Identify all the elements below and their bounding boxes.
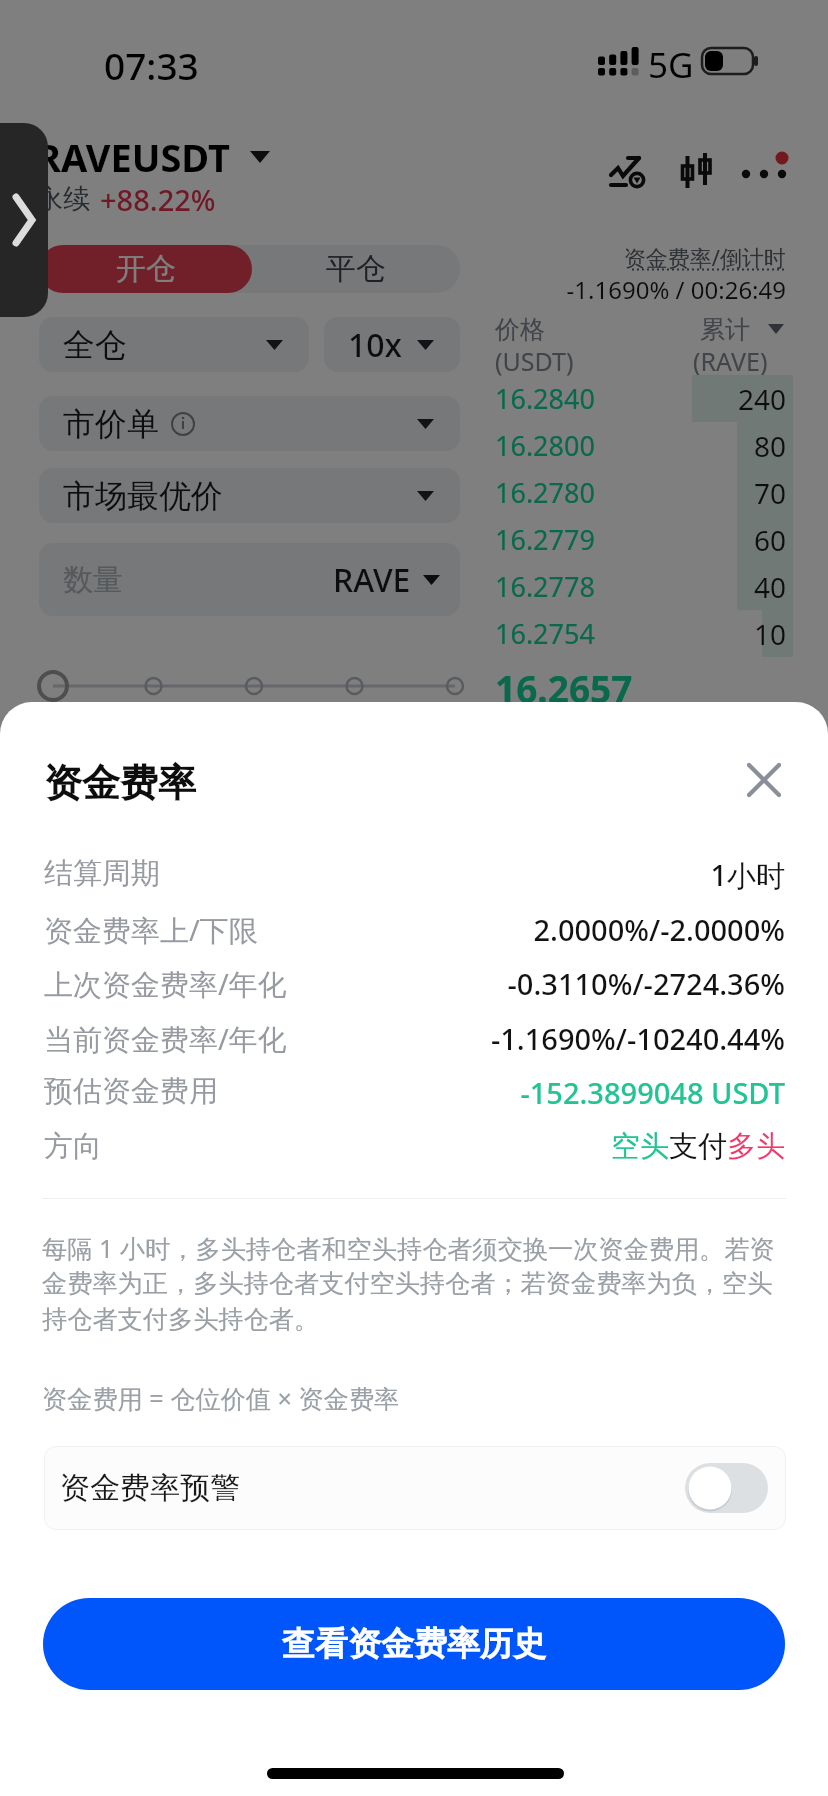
staticText: 资金费率预警 bbox=[60, 1469, 240, 1507]
button[interactable]: 市价单 bbox=[39, 396, 460, 451]
staticText: 70 bbox=[686, 474, 786, 512]
staticText: -0.3110%/-2724.36% bbox=[260, 964, 785, 1003]
staticText: 10 bbox=[686, 615, 786, 653]
button[interactable]: 资金费率预警 bbox=[44, 1446, 786, 1530]
staticText: 上次资金费率/年化 bbox=[44, 964, 287, 1004]
staticText: 市场最优价 bbox=[63, 476, 223, 516]
button[interactable]: Price chart bbox=[598, 145, 656, 197]
staticText: 永续 bbox=[36, 182, 90, 216]
staticText: 80 bbox=[686, 427, 786, 465]
staticText: 价格 bbox=[495, 314, 545, 345]
staticText: 查看资金费率历史 bbox=[282, 1623, 546, 1665]
staticText: 16.2780 bbox=[495, 474, 595, 511]
button[interactable]: 全仓 bbox=[39, 317, 309, 372]
staticText: 空头支付多头 bbox=[260, 1128, 785, 1165]
staticText: RAVE bbox=[333, 558, 411, 602]
button[interactable]: 资金费率/倒计时 bbox=[420, 240, 786, 312]
staticText: -1.1690%/-10240.44% bbox=[260, 1019, 785, 1058]
staticText: 1小时 bbox=[260, 855, 785, 895]
staticText: 07:33 bbox=[104, 40, 199, 90]
staticText: 240 bbox=[686, 380, 786, 418]
button[interactable]: 查看资金费率历史 bbox=[43, 1598, 785, 1690]
staticText: +88.22% bbox=[100, 180, 216, 219]
button[interactable]: 开仓 bbox=[39, 245, 252, 293]
staticText: -1.1690% / 00:26:49 bbox=[420, 273, 786, 306]
staticText: 当前资金费率/年化 bbox=[44, 1019, 287, 1059]
staticText: 持仓者支付多头持仓者。 bbox=[42, 1304, 320, 1336]
staticText: 金费率为正，多头持仓者支付空头持仓者；若资金费率为负，空头 bbox=[42, 1268, 773, 1300]
staticText: 16.2778 bbox=[495, 568, 595, 605]
staticText: 16.2754 bbox=[495, 615, 595, 652]
button[interactable]: 数量 bbox=[39, 543, 460, 616]
button[interactable]: Close bbox=[728, 744, 800, 816]
staticText: 方向 bbox=[44, 1128, 102, 1165]
staticText: 平仓 bbox=[326, 250, 386, 288]
staticText: 16.2800 bbox=[495, 427, 595, 464]
staticText: 16.2779 bbox=[495, 521, 595, 558]
staticText: (RAVE) bbox=[693, 344, 768, 378]
staticText: 累计 bbox=[700, 314, 750, 345]
staticText: 2.0000%/-2.0000% bbox=[260, 910, 785, 949]
staticText: 5G bbox=[648, 41, 694, 89]
button[interactable]: 平仓 bbox=[252, 245, 460, 293]
staticText: -152.3899048 USDT bbox=[260, 1073, 785, 1112]
button[interactable]: More options bbox=[738, 145, 794, 197]
staticText: 40 bbox=[686, 568, 786, 606]
staticText: 资金费率/倒计时 bbox=[420, 242, 786, 272]
button[interactable]: Open drawer bbox=[0, 123, 48, 317]
staticText: 16.2840 bbox=[495, 380, 595, 417]
staticText: (USDT) bbox=[495, 344, 574, 378]
staticText: 资金费用 = 仓位价值 × 资金费率 bbox=[42, 1381, 400, 1415]
button[interactable]: Candlestick chart bbox=[672, 145, 726, 197]
staticText: 每隔 1 小时，多头持仓者和空头持仓者须交换一次资金费用。若资 bbox=[42, 1231, 775, 1265]
button[interactable]: 市场最优价 bbox=[39, 468, 460, 523]
staticText: 10x bbox=[348, 323, 402, 367]
staticText: 开仓 bbox=[116, 250, 176, 288]
staticText: 60 bbox=[686, 521, 786, 559]
staticText: 市价单 bbox=[63, 404, 159, 444]
staticText: 资金费率上/下限 bbox=[44, 910, 258, 950]
staticText: 预估资金费用 bbox=[44, 1073, 218, 1110]
staticText: RAVEUSDT bbox=[36, 131, 230, 183]
staticText: 数量 bbox=[63, 561, 123, 599]
staticText: 16.2657 bbox=[495, 663, 633, 713]
button[interactable]: 10x bbox=[324, 317, 460, 372]
staticText: 资金费率 bbox=[44, 759, 196, 807]
staticText: 结算周期 bbox=[44, 855, 160, 892]
staticText: 全仓 bbox=[63, 325, 127, 365]
